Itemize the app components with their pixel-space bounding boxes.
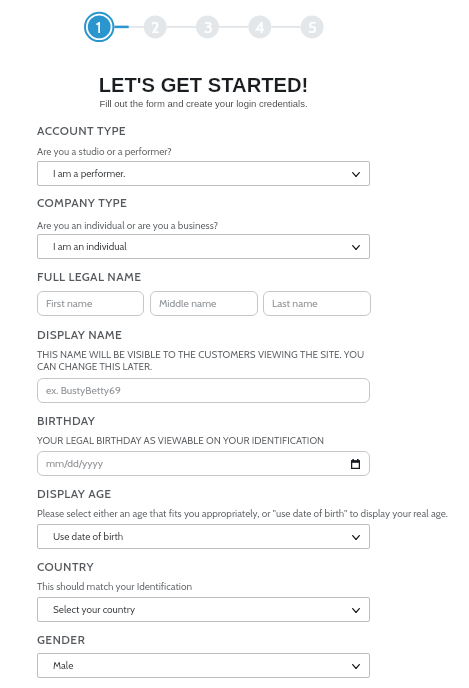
button[interactable]: Male [37,653,370,678]
staticText: I am an individual [53,240,127,252]
staticText: LET'S GET STARTED! [0,74,407,97]
staticText: Select your country [53,603,135,615]
staticText: First name [46,297,93,310]
button[interactable]: Step 1 [84,12,114,42]
staticText: GENDER [37,632,86,647]
button[interactable]: Step 5 [297,12,327,42]
button[interactable]: Use date of birth [37,524,370,549]
button[interactable]: ex. BustyBetty69 [37,378,370,403]
staticText: ACCOUNT TYPE [37,123,126,138]
staticText: Fill out the form and create your login … [0,98,407,109]
button[interactable]: Last name [263,291,371,316]
staticText: 1 [96,18,102,37]
staticText: DISPLAY NAME [37,327,123,342]
button[interactable]: Step 2 [140,12,170,42]
staticText: Middle name [159,297,217,310]
button[interactable]: Step 3 [193,12,223,42]
staticText: 4 [255,18,265,37]
button[interactable]: I am an individual [37,234,370,259]
staticText: mm/dd/yyyy [46,457,104,470]
button[interactable]: First name [37,291,144,316]
staticText: Please select either an age that fits yo… [37,507,457,519]
staticText: Last name [272,297,318,310]
staticText: FULL LEGAL NAME [37,269,142,284]
button[interactable]: Select your country [37,597,370,622]
staticText: DISPLAY AGE [37,486,112,501]
staticText: BIRTHDAY [37,413,96,428]
button[interactable]: Step 4 [245,12,275,42]
staticText: Are you an individual or are you a busin… [37,219,450,231]
staticText: 2 [151,18,160,37]
staticText: This should match your Identification [37,580,450,592]
staticText: Male [53,659,74,671]
button[interactable]: I am a performer. [37,161,370,186]
button[interactable]: mm/dd/yyyy [37,451,370,476]
staticText: I am a performer. [53,167,126,179]
staticText: Are you a studio or a performer? [37,145,450,157]
staticText: THIS NAME WILL BE VISIBLE TO THE CUSTOME… [37,348,370,372]
staticText: Use date of birth [53,530,124,542]
button[interactable]: Middle name [150,291,258,316]
staticText: COUNTRY [37,559,94,574]
staticText: ex. BustyBetty69 [46,384,121,397]
staticText: 3 [204,18,213,37]
staticText: COMPANY TYPE [37,195,128,210]
staticText: YOUR LEGAL BIRTHDAY AS VIEWABLE ON YOUR … [37,434,450,446]
staticText: 5 [308,18,317,37]
